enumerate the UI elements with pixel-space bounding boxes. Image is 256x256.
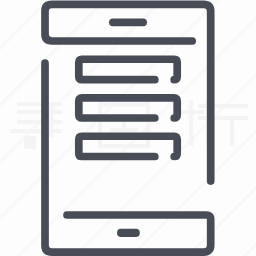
button[interactable]: Mobile device list icon xyxy=(0,0,256,256)
